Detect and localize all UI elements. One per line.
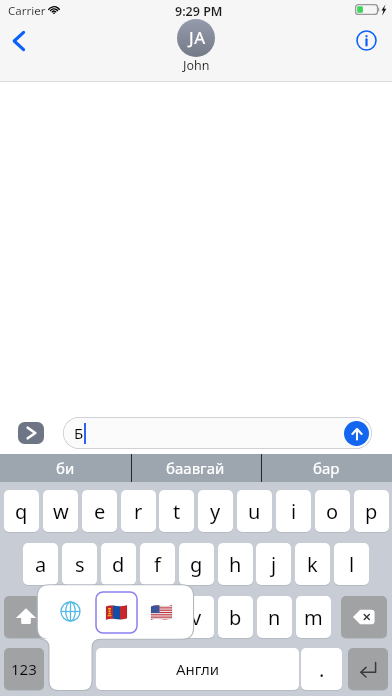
button[interactable]: Apps bbox=[18, 422, 44, 444]
staticText: o bbox=[326, 498, 339, 525]
staticText: d bbox=[112, 551, 125, 578]
button[interactable]: x bbox=[101, 596, 136, 638]
staticText: JA bbox=[189, 26, 206, 49]
staticText: f bbox=[154, 551, 161, 578]
staticText: c bbox=[153, 604, 163, 631]
button[interactable]: t bbox=[159, 490, 194, 532]
staticText: a bbox=[35, 551, 47, 578]
staticText: w bbox=[53, 498, 69, 525]
staticText: p bbox=[365, 498, 378, 525]
button[interactable]: h bbox=[218, 543, 253, 585]
button[interactable]: English keyboard bbox=[141, 592, 182, 633]
staticText: би bbox=[56, 458, 75, 478]
button[interactable]: баавгай bbox=[130, 454, 261, 482]
staticText: k bbox=[307, 551, 318, 578]
staticText: r bbox=[134, 498, 143, 525]
button[interactable]: 123 bbox=[4, 648, 44, 690]
button[interactable]: Англи bbox=[96, 648, 299, 690]
button[interactable]: JA bbox=[177, 19, 215, 74]
button[interactable]: Send bbox=[344, 421, 369, 446]
button[interactable]: бар bbox=[261, 454, 392, 482]
button[interactable]: Б bbox=[63, 417, 372, 449]
staticText: n bbox=[268, 604, 281, 631]
staticText: 9:29 PM bbox=[175, 3, 223, 20]
button[interactable]: m bbox=[296, 596, 331, 638]
staticText: g bbox=[190, 551, 203, 578]
staticText: Б bbox=[74, 423, 84, 443]
button[interactable]: . bbox=[301, 648, 342, 690]
staticText: Carrier bbox=[8, 3, 46, 19]
button[interactable]: f bbox=[140, 543, 175, 585]
staticText: b bbox=[229, 604, 242, 631]
staticText: e bbox=[94, 498, 106, 525]
staticText: 123 bbox=[11, 659, 37, 679]
button[interactable]: o bbox=[315, 490, 350, 532]
staticText: j bbox=[271, 551, 277, 578]
staticText: бар bbox=[313, 458, 340, 478]
button[interactable]: d bbox=[101, 543, 136, 585]
button[interactable]: би bbox=[0, 454, 130, 482]
staticText: баавгай bbox=[166, 458, 225, 478]
button[interactable]: w bbox=[43, 490, 78, 532]
button[interactable]: s bbox=[62, 543, 97, 585]
button[interactable]: Details bbox=[350, 25, 382, 56]
button[interactable]: Return bbox=[348, 648, 388, 690]
button[interactable]: g bbox=[179, 543, 214, 585]
button[interactable]: a bbox=[23, 543, 58, 585]
button[interactable]: l bbox=[334, 543, 369, 585]
staticText: t bbox=[173, 498, 181, 525]
button[interactable]: r bbox=[121, 490, 156, 532]
staticText: z bbox=[75, 604, 85, 631]
button[interactable]: p bbox=[354, 490, 389, 532]
button[interactable]: c bbox=[140, 596, 175, 638]
staticText: y bbox=[210, 498, 221, 525]
button[interactable]: Shift bbox=[4, 596, 48, 638]
button[interactable]: Delete bbox=[341, 596, 387, 638]
button[interactable]: v bbox=[179, 596, 214, 638]
staticText: Англи bbox=[176, 659, 220, 679]
button[interactable]: z bbox=[62, 596, 97, 638]
staticText: u bbox=[248, 498, 261, 525]
button[interactable]: i bbox=[276, 490, 311, 532]
staticText: John bbox=[183, 57, 210, 74]
button[interactable]: q bbox=[4, 490, 39, 532]
staticText: m bbox=[304, 604, 323, 631]
staticText: i bbox=[291, 498, 297, 525]
staticText: q bbox=[15, 498, 28, 525]
button[interactable]: b bbox=[218, 596, 253, 638]
button[interactable]: Mongolian keyboard bbox=[96, 592, 137, 633]
button[interactable]: u bbox=[237, 490, 272, 532]
button[interactable]: e bbox=[82, 490, 117, 532]
button[interactable]: j bbox=[256, 543, 291, 585]
staticText: s bbox=[75, 551, 85, 578]
staticText: . bbox=[319, 656, 325, 683]
staticText: v bbox=[191, 604, 202, 631]
staticText: h bbox=[229, 551, 242, 578]
button[interactable]: k bbox=[295, 543, 330, 585]
staticText: x bbox=[113, 604, 124, 631]
button[interactable]: Back bbox=[3, 25, 31, 57]
staticText: l bbox=[349, 551, 355, 578]
button[interactable]: y bbox=[198, 490, 233, 532]
button[interactable]: Emoji keyboard bbox=[53, 589, 87, 633]
button[interactable]: n bbox=[257, 596, 292, 638]
